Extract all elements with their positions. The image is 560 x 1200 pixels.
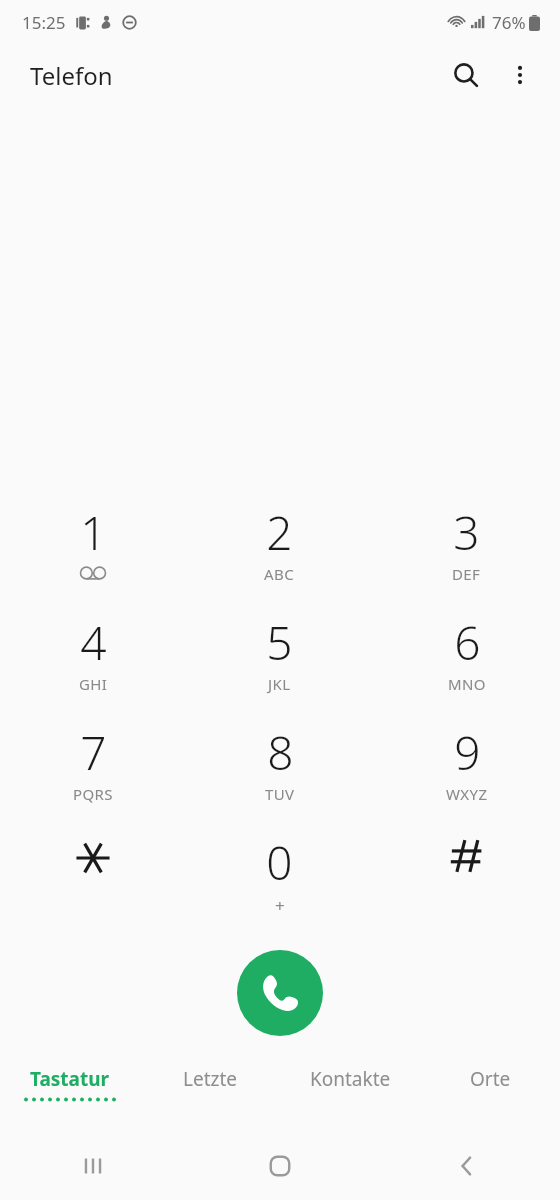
button[interactable]: Letzte	[140, 1066, 280, 1120]
button[interactable]: 5	[186, 602, 373, 712]
button[interactable]: 8	[186, 712, 373, 822]
staticText: PQRS	[73, 784, 113, 804]
button[interactable]: 2	[186, 492, 373, 602]
staticText: 6	[454, 611, 481, 674]
button[interactable]	[373, 822, 560, 932]
staticText: +	[275, 894, 285, 917]
staticText: 1	[80, 501, 107, 564]
staticText: 9	[454, 721, 481, 784]
staticText: 0	[266, 831, 293, 894]
staticText: 5	[266, 611, 293, 674]
staticText: DEF	[452, 564, 481, 584]
staticText: Kontakte	[310, 1066, 391, 1092]
button[interactable]: 4	[0, 602, 186, 712]
staticText: JKL	[268, 674, 291, 694]
staticText: 3	[453, 501, 480, 564]
button[interactable]: 3	[373, 492, 560, 602]
button[interactable]	[0, 822, 186, 932]
button[interactable]: Zurück	[373, 1132, 560, 1200]
button[interactable]: Orte	[420, 1066, 560, 1120]
staticText: GHI	[79, 674, 108, 694]
staticText: ABC	[264, 564, 295, 584]
staticText: TUV	[265, 784, 295, 804]
staticText: 2	[266, 501, 293, 564]
button[interactable]: Suchen	[438, 47, 494, 103]
staticText: Telefon	[30, 59, 113, 92]
button[interactable]: 9	[373, 712, 560, 822]
button[interactable]: Letzte Apps	[0, 1132, 186, 1200]
button[interactable]: 0	[186, 822, 373, 932]
staticText: Orte	[470, 1066, 511, 1092]
button[interactable]: Startbildschirm	[186, 1132, 373, 1200]
staticText: 8	[267, 721, 294, 784]
button[interactable]: 6	[373, 602, 560, 712]
button[interactable]: 1	[0, 492, 186, 602]
button[interactable]: Anrufen	[237, 950, 323, 1036]
staticText: 76%	[492, 11, 526, 34]
staticText: 15:25	[22, 11, 66, 34]
button[interactable]: Weitere Optionen	[494, 49, 546, 101]
staticText: Letzte	[183, 1066, 238, 1092]
button[interactable]: Tastatur	[0, 1066, 140, 1120]
staticText: MNO	[448, 674, 486, 694]
staticText: WXYZ	[446, 784, 488, 804]
staticText: Tastatur	[30, 1066, 110, 1092]
button[interactable]: Kontakte	[280, 1066, 420, 1120]
staticText: 4	[80, 611, 107, 674]
button[interactable]: 7	[0, 712, 186, 822]
staticText: 7	[80, 721, 107, 784]
